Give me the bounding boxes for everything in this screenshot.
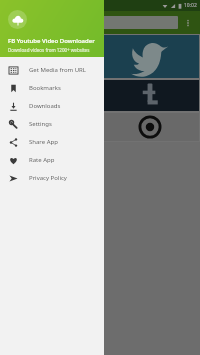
button[interactable] xyxy=(51,35,99,78)
button[interactable]: Share App xyxy=(0,133,104,151)
button[interactable]: Rate App xyxy=(0,151,104,169)
button[interactable] xyxy=(101,35,199,78)
button[interactable]: Bookmarks xyxy=(0,79,104,97)
button[interactable] xyxy=(1,35,49,78)
button[interactable]: More options xyxy=(181,16,195,30)
button[interactable] xyxy=(101,80,199,111)
staticText: Privacy Policy xyxy=(29,174,67,182)
staticText: Settings xyxy=(29,120,52,128)
button[interactable]: Privacy Policy xyxy=(0,169,104,187)
button[interactable]: FB Youtube Video Downloader xyxy=(0,0,104,57)
button[interactable]: Get Media from URL xyxy=(0,61,104,79)
button[interactable] xyxy=(51,80,99,111)
staticText: 10:02 xyxy=(184,2,197,9)
button[interactable] xyxy=(1,113,49,141)
staticText: Get Media from URL xyxy=(29,66,86,74)
staticText: Bookmarks xyxy=(29,84,61,92)
button[interactable] xyxy=(6,16,178,29)
staticText: Rate App xyxy=(29,156,55,164)
staticText: FB Youtube Video Downloader xyxy=(8,37,95,45)
button[interactable]: Downloads xyxy=(0,97,104,115)
button[interactable] xyxy=(101,113,199,141)
staticText: Share App xyxy=(29,138,58,146)
button[interactable]: Settings xyxy=(0,115,104,133)
staticText: Downloads xyxy=(29,102,61,110)
button[interactable] xyxy=(1,80,49,111)
staticText: Download videos from 1200+ websites xyxy=(8,47,90,53)
